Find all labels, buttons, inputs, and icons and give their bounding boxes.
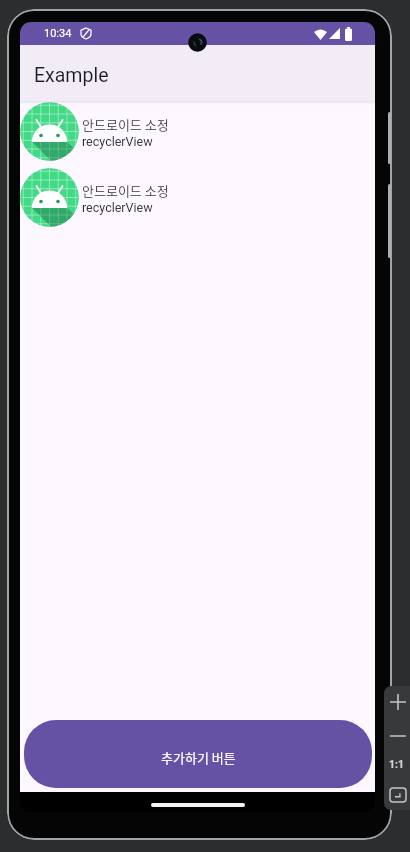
button[interactable]	[390, 788, 406, 802]
button[interactable]	[390, 728, 406, 744]
button[interactable]: 안드로이드 소정	[20, 167, 375, 233]
staticText: 안드로이드 소정	[82, 181, 169, 200]
button[interactable]	[390, 694, 406, 710]
staticText: Example	[34, 64, 109, 87]
staticText: 10:34	[44, 27, 72, 40]
button[interactable]: 안드로이드 소정	[20, 101, 375, 167]
staticText: 추가하기 버튼	[161, 748, 236, 767]
staticText: recyclerView	[82, 200, 153, 215]
staticText: 안드로이드 소정	[82, 115, 169, 134]
button[interactable]: 1:1	[384, 754, 410, 774]
staticText: 1:1	[389, 758, 405, 770]
button[interactable]: 추가하기 버튼	[24, 720, 372, 788]
staticText: recyclerView	[82, 134, 153, 149]
